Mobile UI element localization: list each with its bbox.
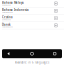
staticText: Dansk — [2, 23, 11, 26]
button[interactable]: Recents — [50, 49, 59, 58]
button[interactable]: Back — [5, 49, 14, 58]
button[interactable]: Dansk — [0, 22, 64, 29]
staticText: Not downloaded — [2, 26, 13, 28]
staticText: Not downloaded — [2, 12, 13, 13]
button[interactable]: Home — [28, 49, 36, 58]
staticText: Downloaded — [2, 19, 11, 21]
button[interactable]: Bahasa Indonesia — [0, 7, 64, 14]
staticText: Available in 6 languages — [15, 61, 49, 64]
button[interactable]: Bahasa Melayu — [0, 0, 64, 7]
staticText: Bahasa Indonesia — [2, 8, 29, 12]
staticText: Cestina — [2, 15, 13, 19]
staticText: Bahasa Melayu — [2, 1, 24, 4]
button[interactable]: Cestina — [0, 15, 64, 22]
staticText: Downloaded — [2, 4, 11, 6]
